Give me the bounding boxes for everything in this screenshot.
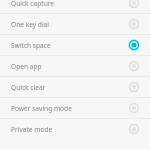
- button[interactable]: Private mode: [0, 119, 150, 139]
- staticText: Open app: [11, 62, 127, 71]
- button[interactable]: Power saving mode: [0, 98, 150, 118]
- button[interactable]: Not selected: [127, 0, 141, 10]
- staticText: One key dial: [11, 20, 127, 29]
- button[interactable]: Not selected: [127, 122, 141, 136]
- button[interactable]: Not selected: [127, 101, 141, 115]
- button[interactable]: Quick capture: [0, 0, 150, 13]
- staticText: Power saving mode: [11, 104, 127, 113]
- staticText: Switch space: [11, 41, 127, 50]
- staticText: Quick capture: [11, 0, 127, 8]
- button[interactable]: Selected: [127, 38, 141, 52]
- button[interactable]: Not selected: [127, 80, 141, 94]
- button[interactable]: Quick clear: [0, 77, 150, 97]
- button[interactable]: Not selected: [127, 17, 141, 31]
- button[interactable]: Switch space: [0, 35, 150, 55]
- button[interactable]: Not selected: [127, 59, 141, 73]
- button[interactable]: Open app: [0, 56, 150, 76]
- button[interactable]: One key dial: [0, 14, 150, 34]
- staticText: Quick clear: [11, 83, 127, 92]
- staticText: Private mode: [11, 125, 127, 134]
